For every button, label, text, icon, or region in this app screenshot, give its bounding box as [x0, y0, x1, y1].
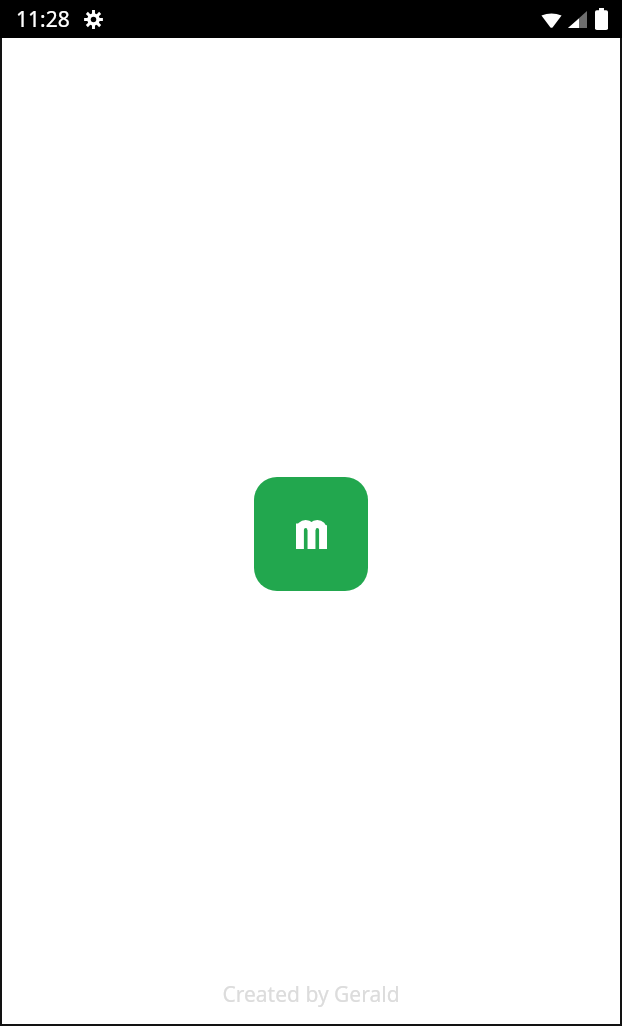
staticText: 11:28: [16, 5, 70, 34]
button[interactable]: Created by Gerald: [2, 980, 620, 1009]
other: Wi-Fi: [541, 11, 562, 28]
button[interactable]: App logo: [254, 477, 368, 591]
other: App logo: [296, 520, 327, 549]
other: Battery full: [595, 8, 608, 30]
other: Settings: [84, 10, 103, 29]
staticText: Created by Gerald: [222, 980, 400, 1009]
other: Mobile signal: [568, 11, 587, 28]
